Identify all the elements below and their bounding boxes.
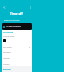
staticText: Balance summary bbox=[4, 19, 20, 22]
staticText: Time off bbox=[10, 12, 23, 16]
button[interactable]: Unpaid bbox=[2, 62, 32, 67]
staticText: 14 days available bbox=[6, 25, 21, 28]
button[interactable]: UPCOMING bbox=[3, 31, 14, 33]
staticText: Sick leave bbox=[3, 46, 12, 49]
button[interactable]: Back bbox=[2, 5, 6, 9]
staticText: Unpaid bbox=[3, 63, 10, 66]
button[interactable]: Request bbox=[2, 66, 32, 72]
button[interactable]: Leave type bbox=[3, 39, 6, 42]
button[interactable]: More options bbox=[28, 5, 32, 9]
staticText: Request bbox=[3, 68, 11, 71]
button[interactable]: Sick leave bbox=[2, 45, 32, 50]
staticText: 2 bbox=[29, 46, 31, 49]
staticText: Annual leave bbox=[3, 35, 15, 38]
button[interactable]: Personal bbox=[2, 50, 32, 55]
staticText: Personal bbox=[3, 51, 11, 54]
button[interactable]: 14 days available bbox=[2, 23, 32, 30]
button[interactable]: Holiday bbox=[2, 56, 32, 61]
staticText: UPCOMING bbox=[3, 31, 14, 33]
staticText: Holiday bbox=[3, 57, 10, 60]
